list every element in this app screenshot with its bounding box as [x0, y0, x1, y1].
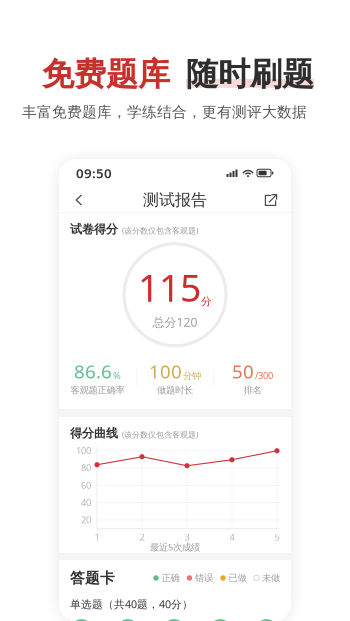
staticText: 试卷得分 — [70, 222, 118, 237]
staticText: (该分数仅包含客观题) — [122, 429, 198, 440]
staticText: 测试报告 — [143, 190, 207, 210]
staticText: 100 — [149, 359, 182, 383]
staticText: 1 — [94, 531, 99, 543]
staticText: 随时刷题 — [186, 55, 314, 94]
staticText: 50 — [232, 359, 254, 383]
staticText: 答题卡 — [70, 569, 115, 587]
staticText: 未做 — [262, 572, 280, 584]
staticText: 丰富免费题库，学练结合，更有测评大数据 — [22, 103, 307, 121]
staticText: 已做 — [228, 572, 246, 584]
staticText: 分钟 — [183, 370, 201, 382]
staticText: 单选题（共40题，40分） — [70, 597, 193, 611]
staticText: % — [113, 369, 121, 381]
staticText: 总分120 — [152, 314, 197, 330]
staticText: 20 — [81, 513, 91, 526]
staticText: 正确 — [161, 572, 179, 584]
staticText: 排名 — [244, 384, 262, 396]
staticText: 4 — [229, 531, 234, 543]
staticText: 80 — [81, 461, 91, 474]
staticText: 60 — [81, 479, 91, 491]
staticText: 做题时长 — [157, 384, 193, 396]
staticText: 3 — [184, 531, 189, 543]
staticText: 100 — [76, 444, 91, 457]
staticText: 分 — [201, 295, 212, 308]
staticText: 40 — [81, 496, 91, 508]
staticText: 免费题库 — [42, 55, 170, 94]
staticText: 得分曲线 — [70, 426, 118, 441]
staticText: 错误 — [195, 572, 213, 584]
staticText: 5 — [274, 531, 279, 543]
button[interactable]: 分享 — [260, 189, 282, 211]
staticText: (该分数仅包含客观题) — [122, 225, 198, 236]
button[interactable]: 返回 — [68, 189, 90, 211]
staticText: 最近5次成绩 — [150, 541, 200, 553]
staticText: 09:50 — [76, 164, 112, 182]
staticText: 客观题正确率 — [70, 384, 124, 396]
staticText: 86.6 — [74, 359, 112, 383]
staticText: /300 — [255, 369, 273, 381]
staticText: 2 — [139, 531, 144, 543]
staticText: 115 — [138, 262, 201, 312]
